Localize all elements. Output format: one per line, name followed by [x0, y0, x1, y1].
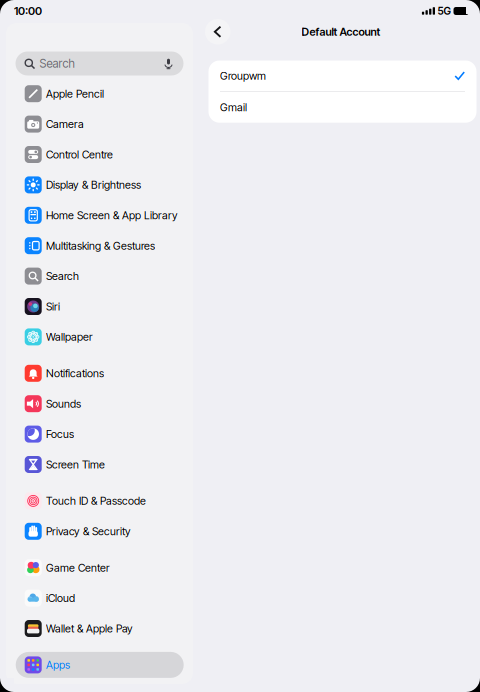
button[interactable]: Apps [6, 650, 192, 680]
staticText: Sounds [46, 397, 81, 410]
button[interactable]: Search [15, 51, 183, 75]
button[interactable]: Home Screen & App Library [6, 200, 192, 230]
button[interactable]: Game Center [6, 552, 192, 583]
button[interactable]: Notifications [6, 358, 192, 388]
staticText: Search [46, 270, 79, 283]
button[interactable]: Apple Pencil [6, 78, 192, 109]
button[interactable]: Siri [6, 291, 192, 322]
button[interactable]: Camera [6, 109, 192, 139]
staticText: Multitasking & Gestures [46, 239, 155, 252]
staticText: Gmail [220, 101, 247, 114]
button[interactable]: Screen Time [6, 449, 192, 480]
staticText: Privacy & Security [46, 525, 131, 538]
staticText: Control Centre [46, 148, 113, 161]
staticText: Wallet & Apple Pay [46, 622, 133, 635]
staticText: Home Screen & App Library [46, 209, 178, 222]
button[interactable]: Wallpaper [6, 322, 192, 352]
staticText: Apps [46, 658, 70, 671]
button[interactable]: Wallet & Apple Pay [6, 613, 192, 644]
button[interactable]: iCloud [6, 583, 192, 613]
staticText: Search [39, 56, 74, 70]
staticText: Touch ID & Passcode [46, 494, 146, 507]
button[interactable]: Display & Brightness [6, 170, 192, 200]
staticText: Siri [46, 300, 60, 313]
button[interactable]: Privacy & Security [6, 516, 192, 546]
staticText: Focus [46, 428, 74, 441]
staticText: Wallpaper [46, 330, 93, 343]
staticText: Camera [46, 118, 84, 131]
staticText: 10:00 [14, 4, 42, 18]
staticText: Default Account [301, 25, 380, 38]
button[interactable]: Groupwm [209, 60, 476, 91]
button[interactable]: Control Centre [6, 139, 192, 170]
staticText: Groupwm [220, 69, 266, 82]
button[interactable]: Multitasking & Gestures [6, 230, 192, 261]
staticText: Display & Brightness [46, 178, 141, 191]
button[interactable]: Back [205, 19, 230, 44]
button[interactable]: Gmail [209, 92, 476, 123]
button[interactable]: Touch ID & Passcode [6, 486, 192, 516]
staticText: iCloud [46, 592, 75, 605]
staticText: Notifications [46, 367, 104, 380]
button[interactable]: Sounds [6, 388, 192, 419]
staticText: 5G [437, 5, 450, 17]
staticText: Game Center [46, 561, 110, 574]
staticText: Screen Time [46, 458, 105, 471]
button[interactable]: Focus [6, 419, 192, 449]
button[interactable]: Search [6, 261, 192, 291]
staticText: Apple Pencil [46, 87, 104, 100]
